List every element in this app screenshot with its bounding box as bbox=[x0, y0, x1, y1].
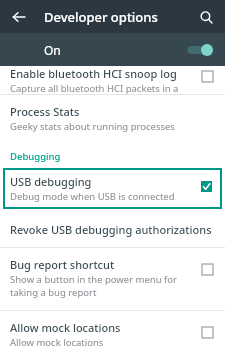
staticText: Allow mock locations bbox=[10, 336, 104, 348]
staticText: USB debugging bbox=[10, 174, 92, 189]
staticText: On bbox=[44, 42, 61, 58]
button[interactable]: USB debugging bbox=[196, 176, 216, 196]
button[interactable]: Allow mock locations bbox=[197, 322, 217, 342]
staticText: Enable bluetooth HCI snoop log bbox=[10, 66, 177, 81]
staticText: Debug mode when USB is connected bbox=[10, 190, 175, 203]
button[interactable]: Search bbox=[193, 4, 219, 30]
button[interactable]: Allow mock locations bbox=[0, 311, 225, 359]
button[interactable]: Revoke USB debugging authorizations bbox=[0, 218, 225, 247]
staticText: Capture all bluetooth HCI packets in a f… bbox=[10, 82, 191, 94]
staticText: Debugging bbox=[10, 150, 61, 163]
button[interactable]: Enable bluetooth HCI snoop log bbox=[197, 66, 217, 86]
staticText: Revoke USB debugging authorizations bbox=[10, 222, 212, 237]
staticText: Show a button in the power menu for taki… bbox=[10, 273, 191, 299]
staticText: Bug report shortcut bbox=[10, 257, 115, 272]
button[interactable]: USB debugging bbox=[3, 168, 222, 209]
button[interactable]: On bbox=[0, 33, 225, 66]
button[interactable]: Back bbox=[6, 4, 32, 30]
button[interactable]: Bug report shortcut bbox=[197, 259, 217, 279]
button[interactable]: Enable bluetooth HCI snoop log bbox=[0, 66, 225, 94]
button[interactable]: Process Stats bbox=[0, 95, 225, 144]
staticText: Geeky stats about running processes bbox=[10, 120, 175, 133]
button[interactable]: Bug report shortcut bbox=[0, 248, 225, 310]
staticText: Process Stats bbox=[10, 104, 80, 119]
staticText: Allow mock locations bbox=[10, 320, 121, 335]
staticText: Developer options bbox=[44, 8, 158, 26]
